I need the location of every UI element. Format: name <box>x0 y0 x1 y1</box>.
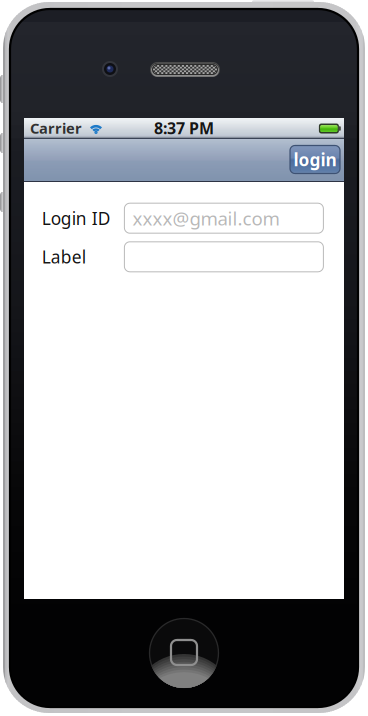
staticText: Carrier <box>30 118 82 138</box>
button[interactable] <box>124 242 323 272</box>
staticText: xxxx@gmail.com <box>132 206 279 231</box>
staticText: login <box>293 148 336 171</box>
staticText: Label <box>42 245 86 268</box>
staticText: 8:37 PM <box>154 117 214 139</box>
staticText: Login ID <box>42 207 111 230</box>
button[interactable]: xxxx@gmail.com <box>124 203 323 233</box>
button[interactable]: login <box>290 145 340 173</box>
